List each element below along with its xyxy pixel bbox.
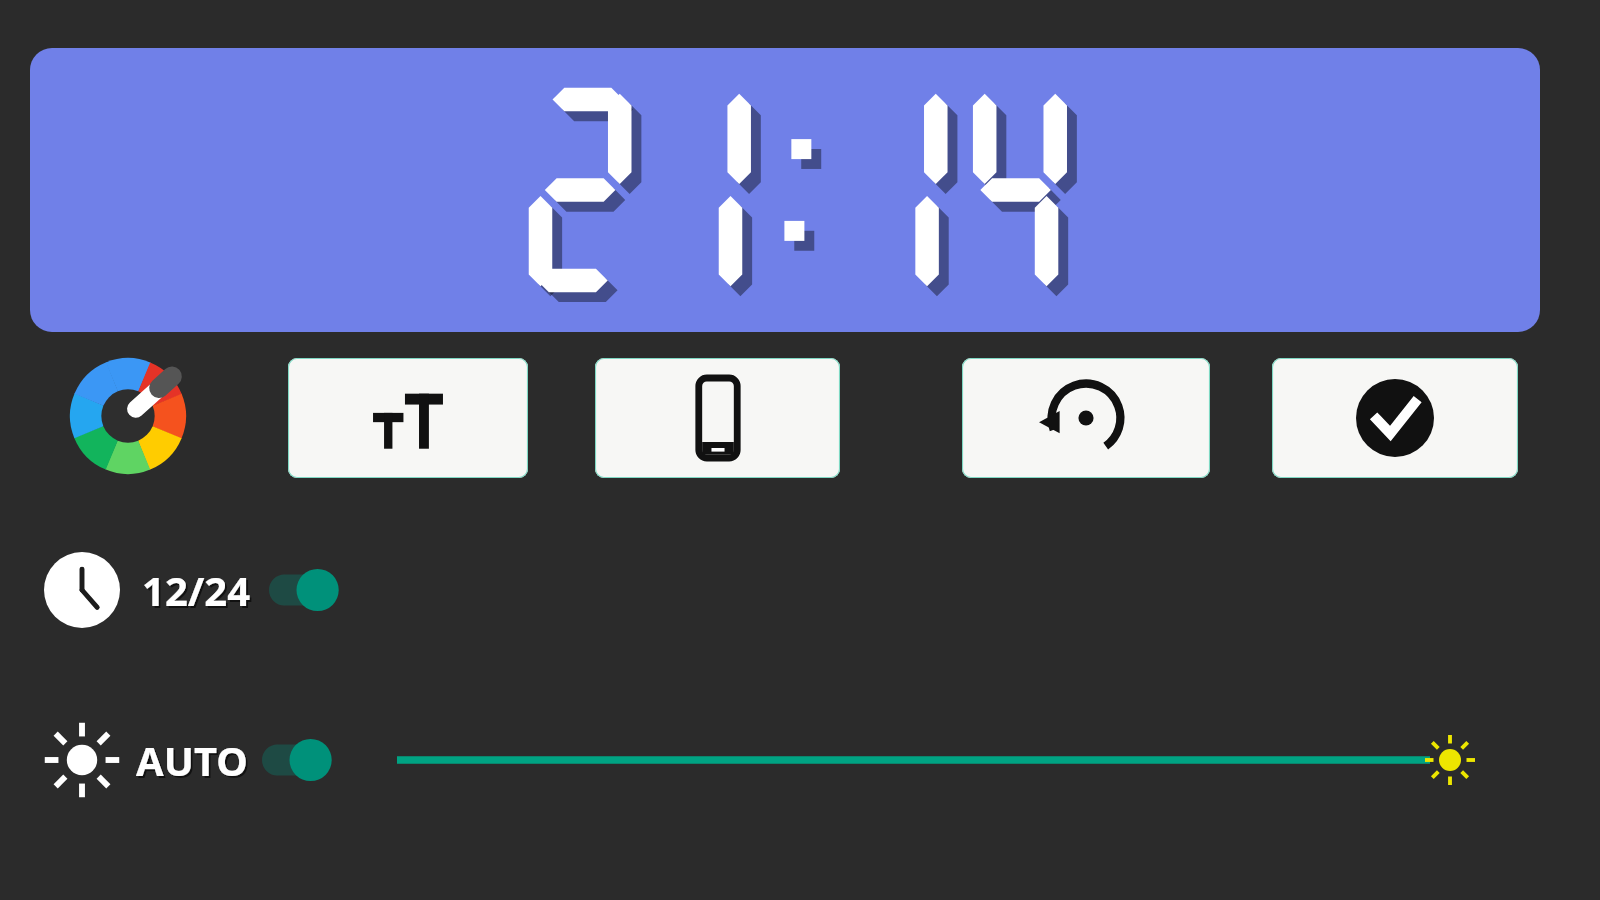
button[interactable]: Confirm [1272, 358, 1518, 478]
button[interactable]: Restore defaults [962, 358, 1210, 478]
button[interactable]: Text size [288, 358, 528, 478]
button[interactable]: 12 or 24 hour clock [269, 568, 345, 612]
button[interactable]: Phone display [595, 358, 840, 478]
button[interactable]: Pick colour [70, 358, 186, 474]
button[interactable]: 12/24 [44, 552, 345, 628]
button[interactable] [30, 48, 1540, 332]
staticText: 12/24 [144, 565, 253, 619]
staticText: AUTO [138, 735, 250, 789]
button[interactable]: Brightness [390, 722, 1550, 798]
button[interactable]: Automatic brightness [262, 738, 338, 782]
button[interactable] [44, 722, 120, 798]
staticText: 12/24 [142, 563, 251, 617]
staticText: AUTO [136, 733, 248, 787]
